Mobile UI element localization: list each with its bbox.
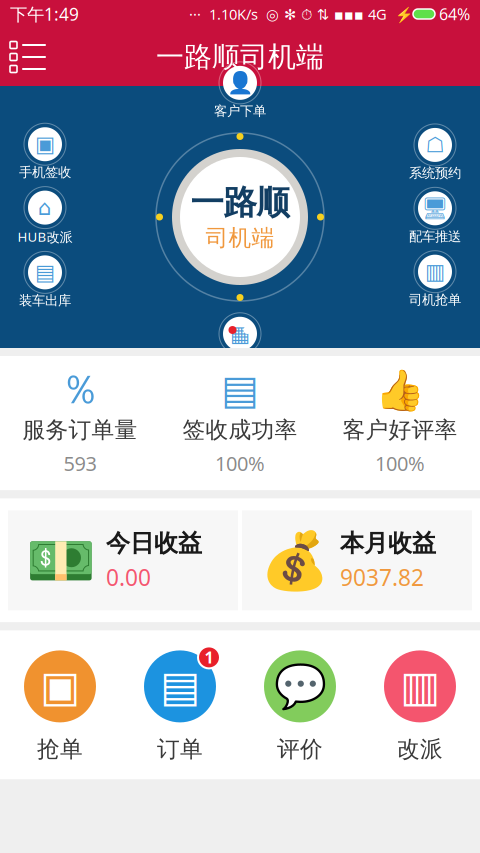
staticText: ％ (60, 365, 100, 414)
staticText: 💬 (273, 662, 326, 711)
staticText: 一路顺 (190, 182, 289, 223)
staticText: 装车出库 (19, 292, 71, 309)
staticText: 100% (215, 450, 265, 476)
staticText: 💰 (260, 528, 330, 592)
staticText: HUB改派 (17, 228, 72, 245)
staticText: 👍 (375, 367, 425, 413)
staticText: ▦ (230, 322, 250, 346)
staticText: 64% (435, 3, 470, 25)
staticText: 司机抢单 (409, 292, 461, 308)
button[interactable]: 💰 (242, 510, 472, 610)
staticText: ▤ (221, 367, 259, 413)
button[interactable]: ▣ (0, 646, 120, 763)
staticText: 🖥 (421, 196, 448, 220)
staticText: ▥ (425, 260, 445, 284)
staticText: 💵 (26, 528, 96, 592)
button[interactable]: ▤ (120, 646, 240, 763)
staticText: ▤ (35, 260, 55, 284)
staticText: 抢单 (37, 735, 83, 763)
staticText: 签收成功率 (182, 416, 297, 444)
staticText: 下午1:49 (10, 2, 79, 25)
staticText: ⌂ (38, 195, 52, 220)
staticText: 1 (204, 647, 213, 668)
staticText: ▣ (35, 132, 55, 156)
staticText: 593 (63, 450, 96, 476)
staticText: ▥ (400, 662, 440, 711)
staticText: 配车推送 (409, 228, 461, 245)
staticText: 一路顺司机端 (156, 40, 324, 74)
staticText: 系统预约 (409, 165, 461, 181)
staticText: 0.00 (106, 562, 151, 592)
staticText: ▤ (160, 662, 200, 711)
staticText: 本月收益 (340, 529, 436, 558)
button[interactable]: 💵 (8, 510, 238, 610)
staticText: ▣ (40, 662, 80, 711)
staticText: 司机端 (205, 224, 274, 252)
staticText: 手机签收 (19, 164, 71, 181)
staticText: 评价 (277, 735, 323, 763)
staticText: 9037.82 (340, 562, 424, 592)
staticText: 100% (375, 450, 425, 476)
button[interactable]: 💬 (240, 646, 360, 763)
button[interactable]: Menu (0, 28, 56, 86)
staticText: 客户下单 (214, 103, 266, 119)
staticText: 改派 (397, 735, 443, 763)
staticText: 👤 (226, 71, 253, 95)
staticText: ··· 1.10K/s ◎ ✻ ⏱ ⇅ ▪▪▪ 4G ⚡ (189, 4, 413, 24)
staticText: ☖ (425, 133, 444, 157)
button[interactable]: ▥ (360, 646, 480, 763)
staticText: 车辆到库 (214, 354, 266, 370)
staticText: 订单 (157, 735, 203, 763)
staticText: 今日收益 (106, 529, 202, 558)
staticText: 服务订单量 (22, 416, 137, 444)
staticText: 客户好评率 (342, 416, 457, 444)
